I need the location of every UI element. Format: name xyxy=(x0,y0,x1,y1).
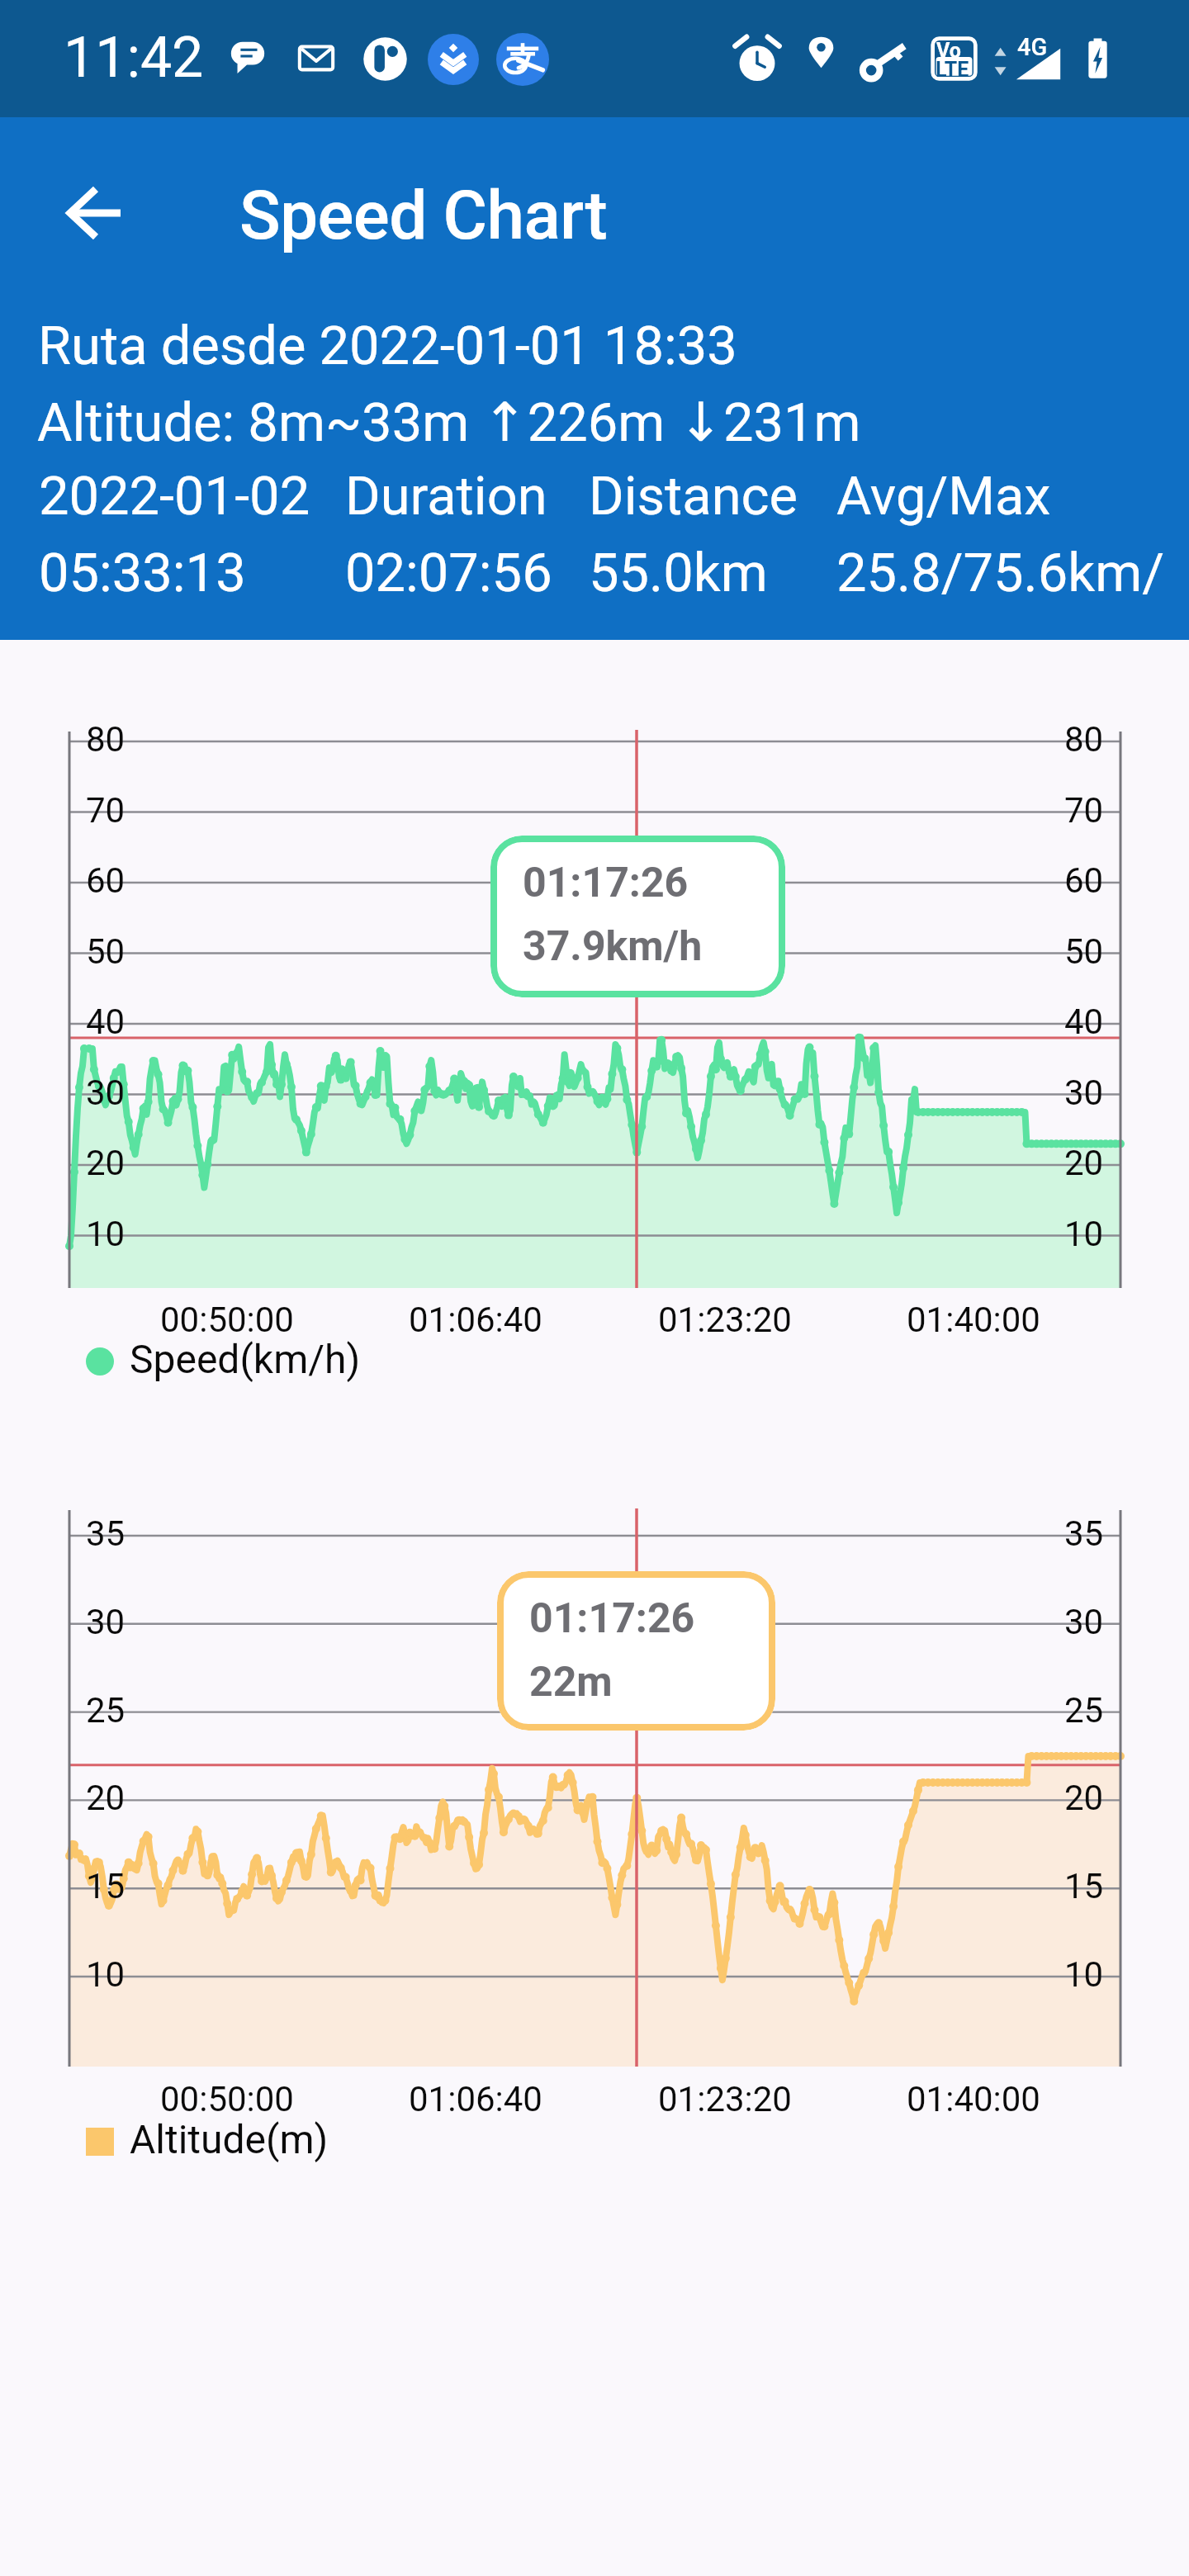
staticText: 25.8/75.6km/ xyxy=(836,542,1165,604)
staticText: 05:33:13 xyxy=(39,542,246,604)
staticText: 80 xyxy=(86,719,126,760)
staticText: Speed Chart xyxy=(239,176,608,255)
staticText: Duration xyxy=(345,465,547,528)
staticText: 01:40:00 xyxy=(907,2079,1040,2119)
staticText: 11:42 xyxy=(64,25,204,91)
staticText: 37.9km/h xyxy=(523,922,703,971)
staticText: 01:40:00 xyxy=(907,1300,1040,1340)
staticText: 20 xyxy=(86,1143,126,1183)
staticText: 30 xyxy=(1064,1602,1104,1642)
staticText: LTE xyxy=(936,58,969,82)
staticText: 30 xyxy=(86,1073,126,1113)
staticText: 20 xyxy=(86,1778,126,1818)
staticText: 15 xyxy=(86,1866,126,1906)
staticText: 25 xyxy=(86,1690,126,1731)
staticText: 55.0km xyxy=(589,542,768,604)
staticText: 60 xyxy=(1064,860,1104,901)
staticText: Distance xyxy=(589,465,798,528)
staticText: 30 xyxy=(1064,1073,1104,1113)
staticText: 80 xyxy=(1064,719,1104,760)
staticText: 10 xyxy=(1064,1954,1104,1995)
staticText: 10 xyxy=(1064,1214,1104,1254)
staticText: 20 xyxy=(1064,1778,1104,1818)
staticText: 01:23:20 xyxy=(658,2079,792,2119)
staticText: Altitude: 8m~33m ↑226m ↓231m xyxy=(37,391,861,454)
staticText: 15 xyxy=(1064,1866,1104,1906)
staticText: 4G xyxy=(1017,33,1048,61)
staticText: 50 xyxy=(86,931,126,972)
staticText: 40 xyxy=(86,1002,126,1042)
staticText: 01:17:26 xyxy=(523,859,689,907)
staticText: 02:07:56 xyxy=(345,542,552,604)
staticText: 70 xyxy=(1064,790,1104,831)
staticText: Ruta desde 2022-01-01 18:33 xyxy=(38,315,737,377)
staticText: Vo xyxy=(936,39,961,63)
staticText: 60 xyxy=(86,860,126,901)
button[interactable]: 01:17:26 xyxy=(490,836,785,997)
staticText: Altitude(m) xyxy=(130,2116,329,2162)
staticText: 35 xyxy=(86,1513,126,1554)
staticText: 2022-01-02 xyxy=(39,465,310,528)
staticText: 10 xyxy=(86,1954,126,1995)
button[interactable]: Altitude(m) xyxy=(50,1500,1140,2076)
button[interactable]: Speed(km/h) xyxy=(50,722,1140,1298)
staticText: 20 xyxy=(1064,1143,1104,1183)
staticText: 01:17:26 xyxy=(529,1594,695,1643)
staticText: 01:06:40 xyxy=(409,1300,542,1340)
staticText: 01:23:20 xyxy=(658,1300,792,1340)
staticText: Avg/Max xyxy=(836,465,1051,528)
button[interactable]: Altitude(m) xyxy=(79,2114,377,2165)
staticText: 25 xyxy=(1064,1690,1104,1731)
staticText: 50 xyxy=(1064,931,1104,972)
staticText: 00:50:00 xyxy=(160,2079,294,2119)
staticText: 70 xyxy=(86,790,126,831)
staticText: 35 xyxy=(1064,1513,1104,1554)
button[interactable]: 01:17:26 xyxy=(497,1571,775,1731)
staticText: 40 xyxy=(1064,1002,1104,1042)
staticText: 22m xyxy=(529,1658,613,1707)
staticText: 00:50:00 xyxy=(160,1300,294,1340)
staticText: 01:06:40 xyxy=(409,2079,542,2119)
button[interactable]: Speed(km/h) xyxy=(79,1333,377,1385)
staticText: Speed(km/h) xyxy=(130,1336,361,1382)
staticText: 30 xyxy=(86,1602,126,1642)
staticText: 10 xyxy=(86,1214,126,1254)
button[interactable]: Back xyxy=(47,167,140,259)
